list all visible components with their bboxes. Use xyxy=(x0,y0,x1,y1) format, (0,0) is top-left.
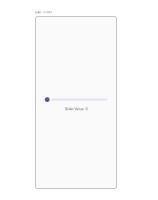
staticText: Slider Value: 0 xyxy=(64,107,87,111)
button[interactable]: Slider, value 0 xyxy=(0,0,158,200)
staticText: Basic Slider xyxy=(35,11,52,14)
